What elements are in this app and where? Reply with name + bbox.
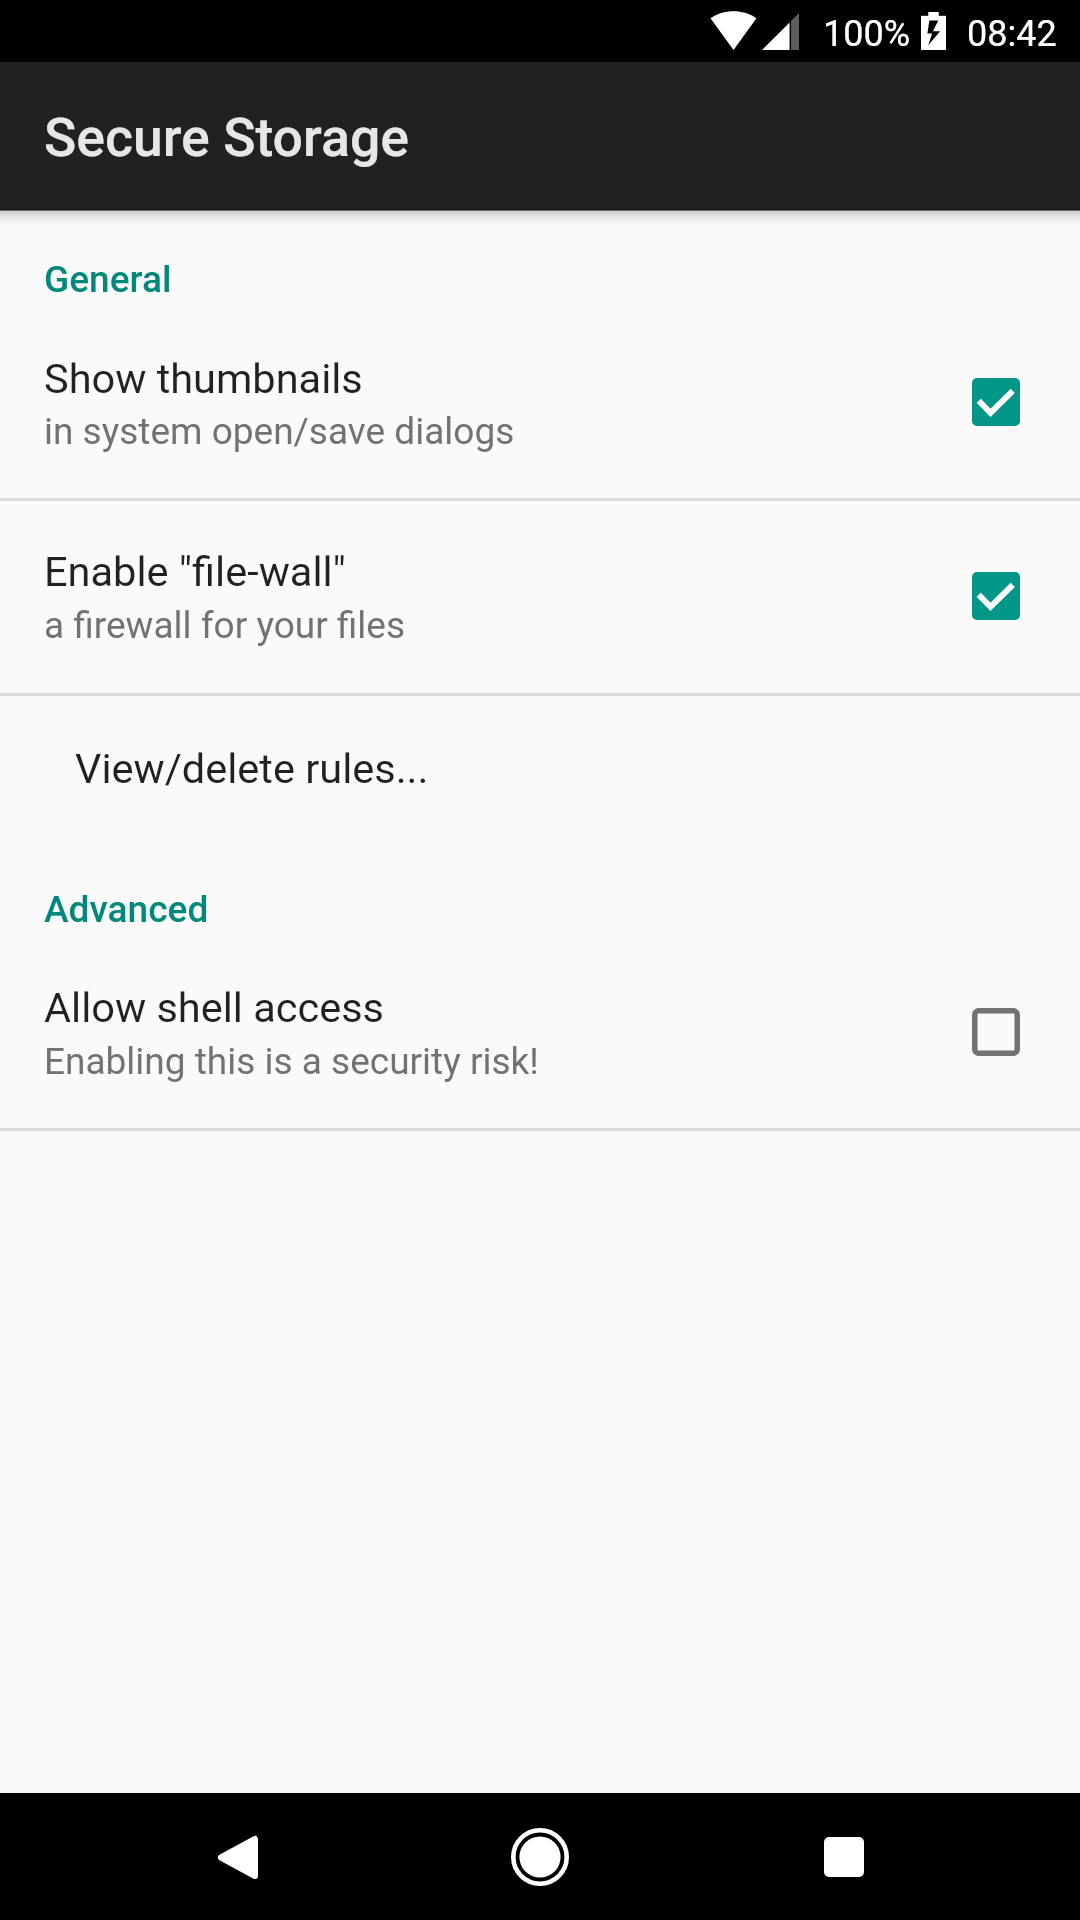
staticText: View/delete rules...	[75, 744, 429, 793]
button[interactable]: Recent apps	[784, 1797, 904, 1917]
button[interactable]: Home	[480, 1797, 600, 1917]
other: Wi-Fi signal	[710, 13, 757, 50]
other: Mobile signal	[762, 13, 799, 50]
button[interactable]: Enable "file-wall"	[0, 500, 1080, 692]
staticText: General	[44, 258, 172, 301]
button[interactable]: Allow shell access	[0, 948, 1080, 1127]
button[interactable]: View/delete rules...	[0, 695, 1080, 832]
staticText: Enabling this is a security risk!	[44, 1040, 539, 1083]
staticText: Advanced	[44, 888, 209, 931]
other: Battery charging	[921, 12, 946, 50]
button[interactable]: Allow shell access	[972, 1008, 1020, 1056]
staticText: Secure Storage	[44, 106, 409, 169]
button[interactable]: Enable "file-wall"	[972, 572, 1020, 620]
staticText: Show thumbnails	[44, 354, 363, 403]
button[interactable]: Show thumbnails	[0, 311, 1080, 497]
staticText: 100%	[823, 13, 911, 55]
staticText: in system open/save dialogs	[44, 410, 515, 453]
staticText: Allow shell access	[44, 983, 385, 1032]
staticText: a firewall for your files	[44, 604, 406, 647]
button[interactable]: Show thumbnails	[972, 378, 1020, 426]
staticText: 08:42	[967, 13, 1057, 55]
button[interactable]: Back	[176, 1797, 296, 1917]
staticText: Enable "file-wall"	[44, 547, 346, 596]
